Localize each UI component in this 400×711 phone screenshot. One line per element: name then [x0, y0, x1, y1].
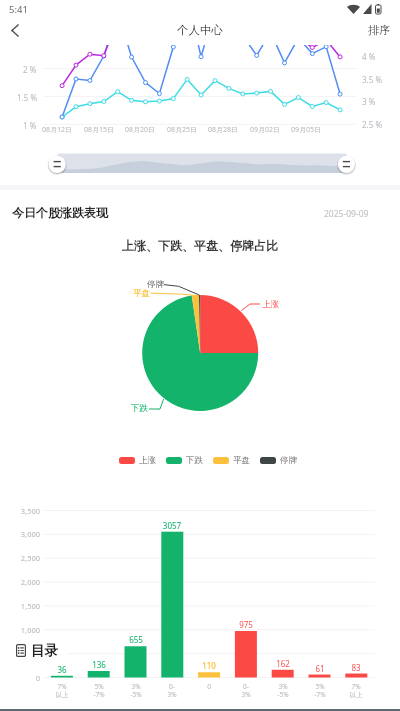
- staticText: 5% -7%: [85, 682, 113, 699]
- staticText: 5% -7%: [306, 682, 334, 699]
- staticText: 1.5 %: [17, 92, 38, 103]
- staticText: 3% -5%: [269, 682, 297, 699]
- staticText: 3.5 %: [362, 74, 383, 85]
- staticText: 2,500: [0, 553, 40, 563]
- staticText: 2.5 %: [362, 119, 383, 130]
- staticText: 目录: [31, 642, 58, 659]
- staticText: 162: [183, 658, 383, 669]
- staticText: 36: [0, 664, 162, 675]
- staticText: 上涨、下跌、平盘、停牌占比: [100, 238, 300, 253]
- staticText: 2 %: [23, 64, 37, 75]
- staticText: 上涨: [262, 299, 279, 310]
- staticText: 08月15日: [0, 125, 199, 135]
- staticText: 3057: [72, 520, 272, 531]
- staticText: 下跌: [131, 403, 148, 414]
- staticText: 2025-09-09: [324, 208, 369, 220]
- staticText: 排序: [368, 23, 390, 37]
- staticText: 停牌: [147, 279, 164, 290]
- staticText: 停牌: [280, 455, 297, 466]
- staticText: 500: [0, 649, 40, 659]
- staticText: 136: [0, 659, 199, 670]
- staticText: 655: [36, 634, 236, 645]
- button[interactable]: 停牌: [260, 455, 297, 466]
- staticText: 08月25日: [82, 125, 282, 135]
- staticText: 110: [109, 660, 309, 671]
- staticText: 83: [256, 662, 400, 673]
- button[interactable]: 目录: [0, 636, 68, 665]
- staticText: 08月20日: [40, 125, 240, 135]
- staticText: 3 %: [362, 96, 376, 107]
- staticText: 09月02日: [165, 125, 365, 135]
- staticText: 0: [195, 682, 223, 691]
- staticText: 08月12日: [0, 125, 157, 135]
- staticText: 09月05日: [206, 125, 400, 135]
- staticText: 1 %: [23, 120, 37, 131]
- staticText: 7% 以上: [48, 682, 76, 699]
- staticText: 7% 以上: [342, 682, 370, 699]
- button[interactable]: 排序: [368, 23, 390, 37]
- button[interactable]: Back: [0, 18, 30, 42]
- staticText: 平盘: [133, 288, 150, 299]
- staticText: 2,000: [0, 577, 40, 587]
- staticText: 08月28日: [123, 125, 323, 135]
- staticText: 0: [0, 673, 40, 683]
- staticText: 0- 3%: [158, 682, 186, 699]
- staticText: 0- 3%: [232, 682, 260, 699]
- staticText: 3,000: [0, 529, 40, 539]
- button[interactable]: 下跌: [166, 455, 203, 466]
- staticText: 上涨: [139, 455, 156, 466]
- staticText: 5:41: [9, 3, 28, 16]
- button[interactable]: 上涨: [119, 455, 156, 466]
- staticText: 3% -5%: [122, 682, 150, 699]
- staticText: 1,000: [0, 625, 40, 635]
- staticText: 1,500: [0, 601, 40, 611]
- staticText: 4 %: [362, 51, 376, 62]
- staticText: 平盘: [233, 455, 250, 466]
- staticText: 61: [220, 663, 400, 674]
- button[interactable]: 平盘: [213, 455, 250, 466]
- staticText: 下跌: [186, 455, 203, 466]
- staticText: 今日个股涨跌表现: [12, 205, 108, 220]
- staticText: 975: [146, 619, 346, 630]
- staticText: 个人中心: [177, 23, 223, 37]
- staticText: 3,500: [0, 506, 40, 516]
